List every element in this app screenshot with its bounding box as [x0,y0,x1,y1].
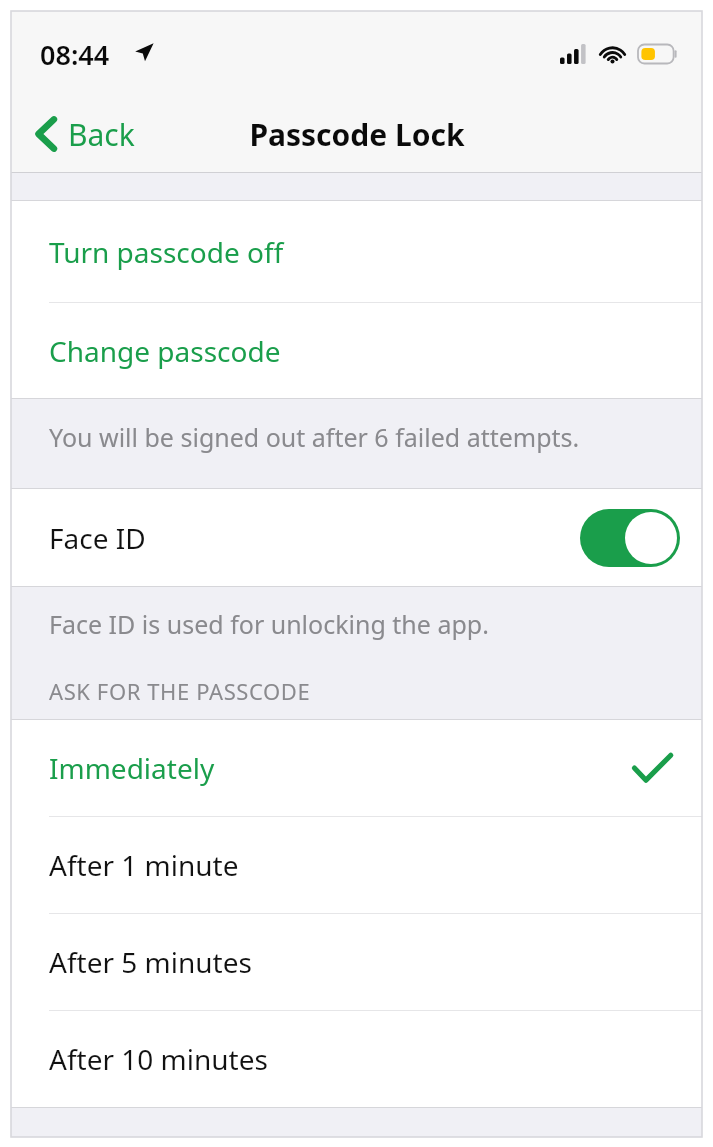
staticText: Passcode Lock [249,114,465,155]
staticText: After 5 minutes [49,943,252,981]
button[interactable]: Turn passcode off [11,201,702,302]
staticText: Turn passcode off [49,233,284,271]
button[interactable]: After 1 minute [11,817,702,913]
staticText: ASK FOR THE PASSCODE [49,676,311,706]
staticText: 08:44 [40,36,110,73]
button[interactable]: Face ID toggle, on [580,509,680,567]
button[interactable]: After 10 minutes [11,1011,702,1107]
button[interactable]: Change passcode [11,303,702,398]
button[interactable]: Face ID [11,489,702,586]
button[interactable]: After 5 minutes [11,914,702,1010]
staticText: Change passcode [49,332,281,370]
staticText: Face ID [49,519,146,557]
staticText: After 1 minute [49,846,239,884]
staticText: Back [68,114,135,155]
staticText: You will be signed out after 6 failed at… [49,420,580,454]
staticText: After 10 minutes [49,1040,268,1078]
button[interactable]: Immediately [11,720,702,816]
staticText: Face ID is used for unlocking the app. [49,607,489,641]
button[interactable]: Back [11,96,151,172]
staticText: Immediately [49,749,215,787]
